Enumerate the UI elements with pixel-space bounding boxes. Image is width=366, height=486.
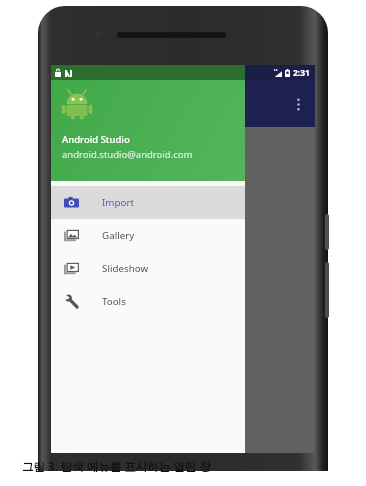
staticText: 그림 3. 탐색 메뉴를 표시하는 열린 창 [22, 459, 211, 475]
button[interactable]: Slideshow [51, 252, 245, 285]
staticText: Android Studio [62, 133, 130, 146]
staticText: Slideshow [102, 262, 149, 275]
staticText: android.studio@android.com [62, 148, 193, 161]
button[interactable]: Tools [51, 285, 245, 318]
button[interactable]: Gallery [51, 219, 245, 252]
button[interactable]: More options [284, 90, 312, 118]
staticText: 2:31 [293, 67, 310, 79]
staticText: Gallery [102, 229, 135, 242]
staticText: Import [102, 196, 135, 209]
button[interactable]: Import [51, 186, 245, 219]
staticText: Tools [102, 295, 126, 308]
